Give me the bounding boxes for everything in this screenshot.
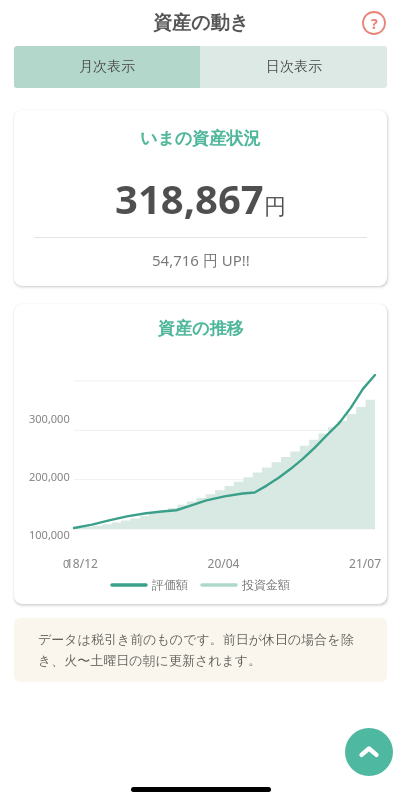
staticText: 円 [264, 193, 286, 221]
staticText: 54,716 円 UP!! [152, 250, 250, 270]
staticText: 18/12 [66, 555, 171, 571]
staticText: 200,000 [29, 469, 70, 484]
staticText: いまの資産状況 [140, 128, 261, 149]
staticText: 0 [63, 556, 70, 571]
staticText: 318,867 [115, 171, 264, 225]
button[interactable]: 資産の推移 [14, 304, 387, 604]
button[interactable]: いまの資産状況 [14, 110, 387, 286]
button[interactable]: 日次表示 [200, 46, 387, 88]
button[interactable]: Help [359, 8, 389, 38]
staticText: 21/07 [276, 555, 381, 571]
staticText: 資産の動き [153, 11, 249, 35]
staticText: 100,000 [29, 527, 70, 542]
staticText: 評価額 [152, 577, 188, 592]
staticText: 300,000 [29, 411, 70, 426]
button[interactable]: Scroll to top [345, 728, 393, 776]
staticText: 資産の推移 [158, 318, 244, 339]
staticText: データは税引き前のものです。前日が休日の場合を除き、火〜土曜日の朝に更新されます… [38, 631, 363, 669]
button[interactable]: 月次表示 [14, 46, 200, 88]
staticText: 投資金額 [242, 577, 290, 592]
staticText: 月次表示 [79, 58, 135, 76]
staticText: 日次表示 [266, 58, 322, 76]
staticText: 20/04 [171, 555, 276, 571]
button[interactable]: データは税引き前のものです。前日が休日の場合を除き、火〜土曜日の朝に更新されます… [14, 618, 387, 682]
staticText: ? [371, 14, 378, 33]
